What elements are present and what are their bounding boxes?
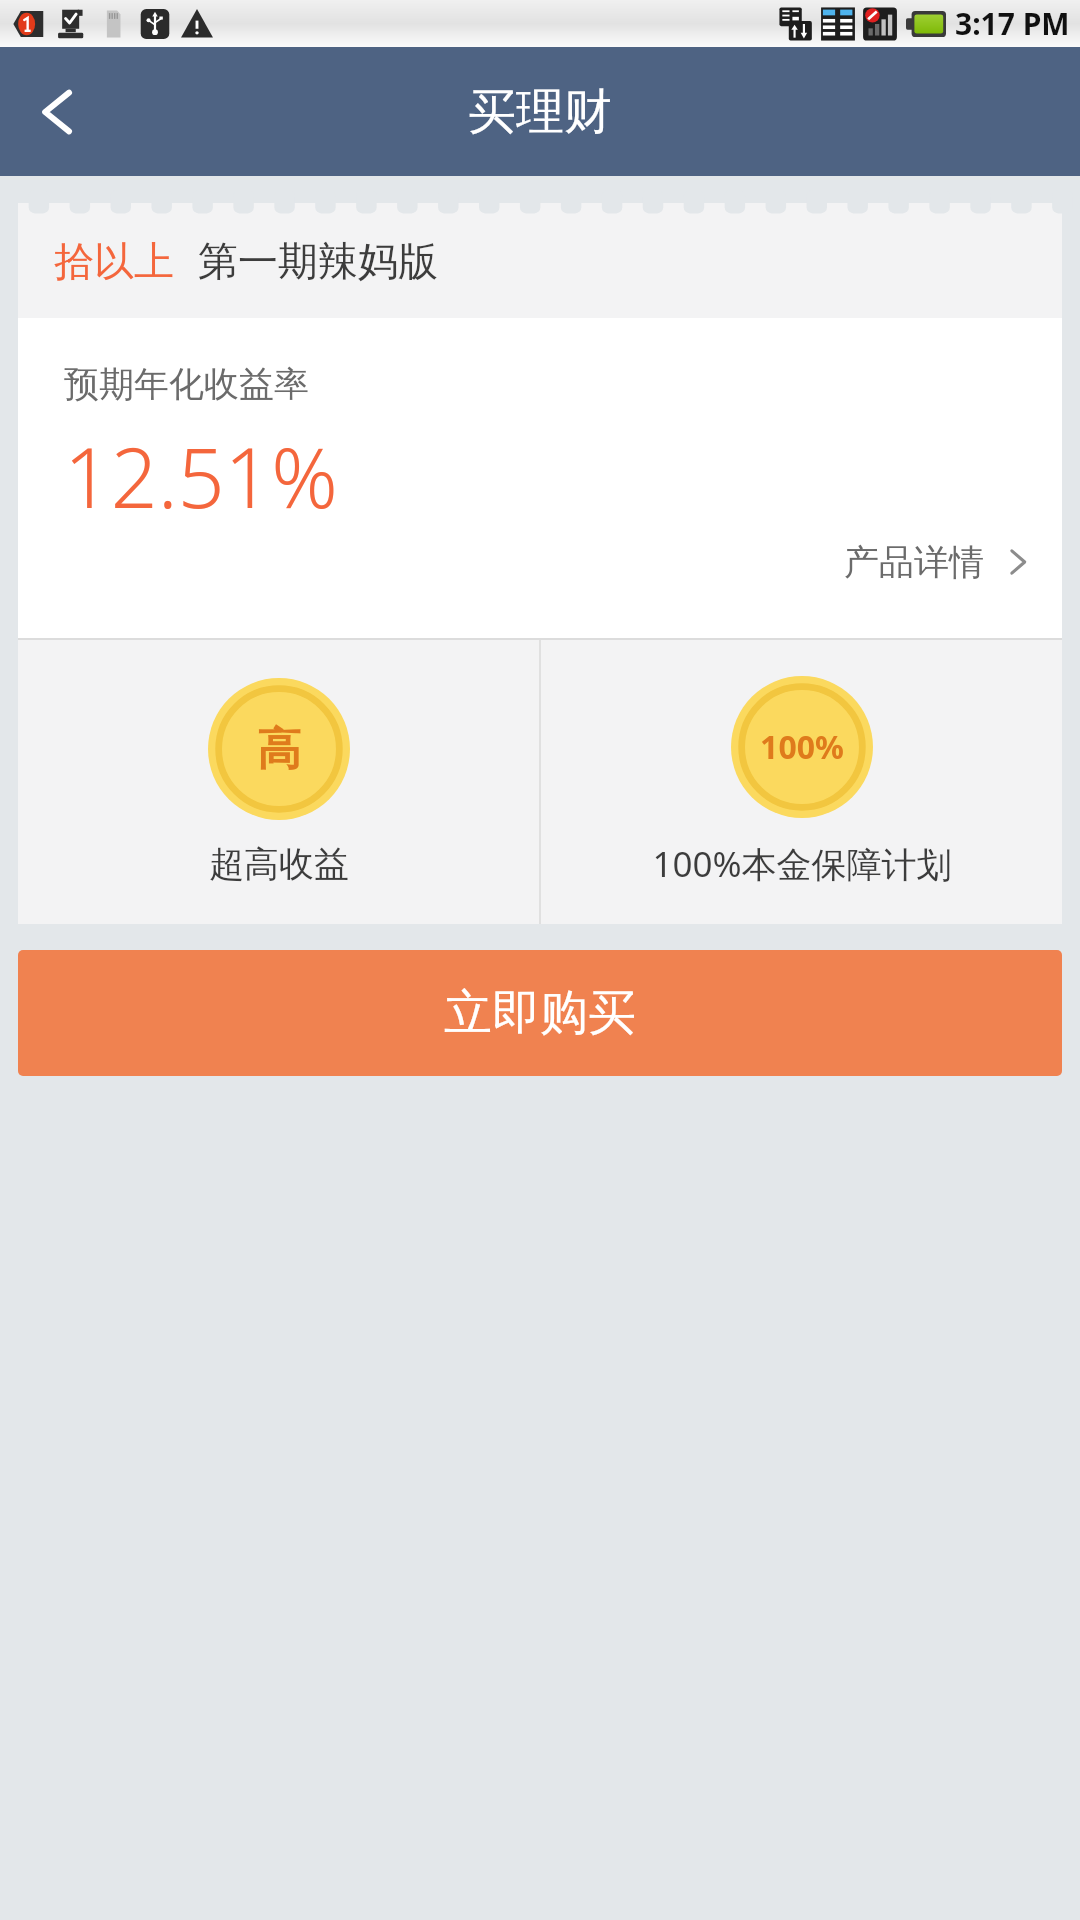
staticText: 12.51% xyxy=(64,420,338,532)
button[interactable]: 100% xyxy=(541,640,1062,924)
staticText: 拾以上 xyxy=(54,236,174,286)
staticText: 买理财 xyxy=(468,82,612,142)
staticText: 超高收益 xyxy=(209,842,349,886)
staticText: 100%本金保障计划 xyxy=(652,840,952,888)
staticText: 预期年化收益率 xyxy=(64,362,309,406)
staticText: 100% xyxy=(760,725,844,769)
staticText: 第一期辣妈版 xyxy=(198,236,438,286)
staticText: 3:17 PM xyxy=(955,3,1070,44)
button[interactable]: 立即购买 xyxy=(18,950,1062,1076)
staticText: 产品详情 xyxy=(844,540,984,584)
staticText: 高 xyxy=(257,722,301,777)
button[interactable]: Back xyxy=(0,47,115,176)
button[interactable]: 高 xyxy=(18,640,539,924)
button[interactable]: 产品详情 xyxy=(836,532,1040,592)
staticText: 立即购买 xyxy=(444,983,636,1043)
